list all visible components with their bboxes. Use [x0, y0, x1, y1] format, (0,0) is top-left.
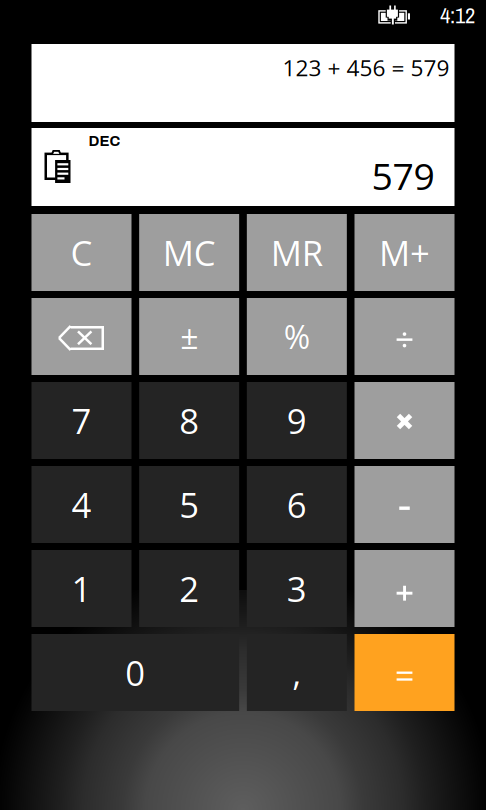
staticText: 1 [71, 565, 91, 612]
staticText: , [292, 649, 301, 696]
button[interactable]: Multiply [354, 382, 454, 459]
button[interactable]: MR [247, 214, 347, 291]
staticText: DEC [88, 133, 120, 149]
button[interactable]: Equals [354, 634, 454, 711]
button[interactable]: 5 [139, 466, 239, 543]
button[interactable]: C [31, 214, 131, 291]
button[interactable]: ± [139, 298, 239, 375]
button[interactable]: Divide [354, 298, 454, 375]
button[interactable]: Subtract [354, 466, 454, 543]
staticText: 9 [287, 397, 307, 444]
staticText: 123 + 456 = 579 [282, 52, 449, 83]
staticText: 579 [371, 150, 434, 201]
button[interactable]: % [247, 298, 347, 375]
button[interactable]: 4 [31, 466, 131, 543]
staticText: ± [180, 315, 198, 358]
button[interactable]: 2 [139, 550, 239, 627]
staticText: % [284, 315, 310, 358]
button[interactable]: MC [139, 214, 239, 291]
button[interactable]: Add [354, 550, 454, 627]
button[interactable]: , [247, 634, 347, 711]
button[interactable]: 8 [139, 382, 239, 459]
button[interactable]: 0 [31, 634, 239, 711]
staticText: 6 [287, 481, 307, 528]
button[interactable]: M+ [354, 214, 454, 291]
button[interactable]: 6 [247, 466, 347, 543]
staticText: MR [271, 229, 323, 276]
staticText: 8 [179, 397, 199, 444]
button[interactable]: 9 [247, 382, 347, 459]
staticText: 4 [71, 481, 91, 528]
staticText: 2 [179, 565, 199, 612]
staticText: 0 [125, 649, 145, 696]
staticText: C [70, 229, 92, 276]
staticText: 5 [179, 481, 199, 528]
staticText: M+ [379, 229, 430, 276]
button[interactable]: 1 [31, 550, 131, 627]
button[interactable]: 7 [31, 382, 131, 459]
staticText: 4:12 [440, 0, 475, 30]
staticText: MC [163, 229, 216, 276]
button[interactable]: 3 [247, 550, 347, 627]
staticText: 7 [71, 397, 91, 444]
staticText: 3 [287, 565, 307, 612]
button[interactable]: Backspace [31, 298, 131, 375]
